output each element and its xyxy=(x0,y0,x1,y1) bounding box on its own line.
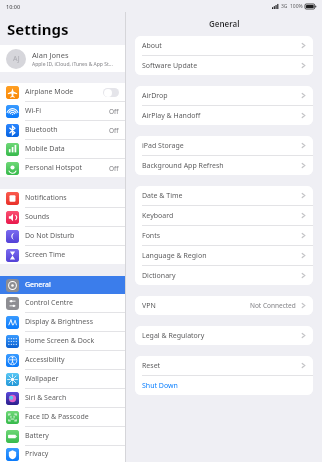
button[interactable]: Reset xyxy=(135,356,313,375)
staticText: VPN xyxy=(142,301,156,311)
staticText: Apple ID, iCloud, iTunes & App St... xyxy=(32,61,113,68)
button[interactable]: Legal & Regulatory xyxy=(135,326,313,345)
button[interactable]: Screen Time xyxy=(0,246,125,264)
staticText: Display & Brightness xyxy=(25,317,119,327)
staticText: Reset xyxy=(142,361,161,371)
staticText: About xyxy=(142,41,162,51)
button[interactable]: AirDrop xyxy=(135,86,313,105)
button[interactable]: Fonts xyxy=(135,226,313,245)
staticText: AJ xyxy=(13,54,20,64)
staticText: Wallpaper xyxy=(25,374,119,384)
button[interactable]: AJ xyxy=(0,45,125,72)
button[interactable]: Background App Refresh xyxy=(135,156,313,175)
staticText: Control Centre xyxy=(25,298,119,308)
staticText: Battery xyxy=(25,431,119,441)
button[interactable]: Date & Time xyxy=(135,186,313,205)
staticText: Dictionary xyxy=(142,271,176,281)
button[interactable]: Airplane Mode xyxy=(0,83,125,101)
button[interactable]: Face ID & Passcode xyxy=(0,408,125,426)
staticText: Language & Region xyxy=(142,251,207,261)
button[interactable]: Display & Brightness xyxy=(0,313,125,331)
staticText: Background App Refresh xyxy=(142,161,224,171)
staticText: Software Update xyxy=(142,61,198,71)
button[interactable]: Shut Down xyxy=(135,376,313,395)
button[interactable]: Airplane Mode toggle xyxy=(103,88,119,97)
staticText: Keyboard xyxy=(142,211,174,221)
button[interactable]: About xyxy=(135,36,313,55)
staticText: 100% xyxy=(290,3,303,10)
button[interactable]: General xyxy=(0,276,125,294)
button[interactable]: Privacy xyxy=(0,446,125,462)
button[interactable]: Home Screen & Dock xyxy=(0,332,125,350)
staticText: Siri & Search xyxy=(25,393,119,403)
button[interactable]: Personal Hotspot xyxy=(0,159,125,177)
button[interactable]: Do Not Disturb xyxy=(0,227,125,245)
staticText: Privacy xyxy=(25,449,119,459)
button[interactable]: AirPlay & Handoff xyxy=(135,106,313,125)
staticText: 10:00 xyxy=(6,3,21,10)
staticText: Screen Time xyxy=(25,250,119,260)
staticText: Settings xyxy=(7,19,69,39)
button[interactable]: Notifications xyxy=(0,189,125,207)
staticText: Mobile Data xyxy=(25,144,119,154)
button[interactable]: Dictionary xyxy=(135,266,313,285)
button[interactable]: Keyboard xyxy=(135,206,313,225)
staticText: General xyxy=(209,18,240,29)
staticText: Date & Time xyxy=(142,191,183,201)
staticText: Off xyxy=(109,126,119,135)
staticText: Home Screen & Dock xyxy=(25,336,119,346)
staticText: Personal Hotspot xyxy=(25,163,109,173)
staticText: Legal & Regulatory xyxy=(142,331,205,341)
button[interactable]: VPN xyxy=(135,296,313,315)
staticText: Shut Down xyxy=(142,381,178,391)
staticText: Not Connected xyxy=(250,301,296,310)
staticText: Do Not Disturb xyxy=(25,231,119,241)
staticText: AirPlay & Handoff xyxy=(142,111,201,121)
staticText: Wi-Fi xyxy=(25,106,109,116)
button[interactable]: Language & Region xyxy=(135,246,313,265)
staticText: Fonts xyxy=(142,231,161,241)
staticText: Sounds xyxy=(25,212,119,222)
button[interactable]: Battery xyxy=(0,427,125,445)
staticText: Face ID & Passcode xyxy=(25,412,119,422)
button[interactable]: Mobile Data xyxy=(0,140,125,158)
staticText: Accessibility xyxy=(25,355,119,365)
button[interactable]: Siri & Search xyxy=(0,389,125,407)
button[interactable]: Wallpaper xyxy=(0,370,125,388)
staticText: Alan Jones xyxy=(32,50,69,60)
button[interactable]: Control Centre xyxy=(0,294,125,312)
staticText: Off xyxy=(109,164,119,173)
staticText: Off xyxy=(109,107,119,116)
button[interactable]: Wi-Fi xyxy=(0,102,125,120)
staticText: 3G xyxy=(281,3,288,10)
button[interactable]: iPad Storage xyxy=(135,136,313,155)
staticText: Airplane Mode xyxy=(25,87,103,97)
button[interactable]: Accessibility xyxy=(0,351,125,369)
button[interactable]: Sounds xyxy=(0,208,125,226)
button[interactable]: Software Update xyxy=(135,56,313,75)
staticText: AirDrop xyxy=(142,91,168,101)
button[interactable]: Bluetooth xyxy=(0,121,125,139)
staticText: Notifications xyxy=(25,193,119,203)
staticText: iPad Storage xyxy=(142,141,184,151)
staticText: Bluetooth xyxy=(25,125,109,135)
staticText: General xyxy=(25,280,119,290)
